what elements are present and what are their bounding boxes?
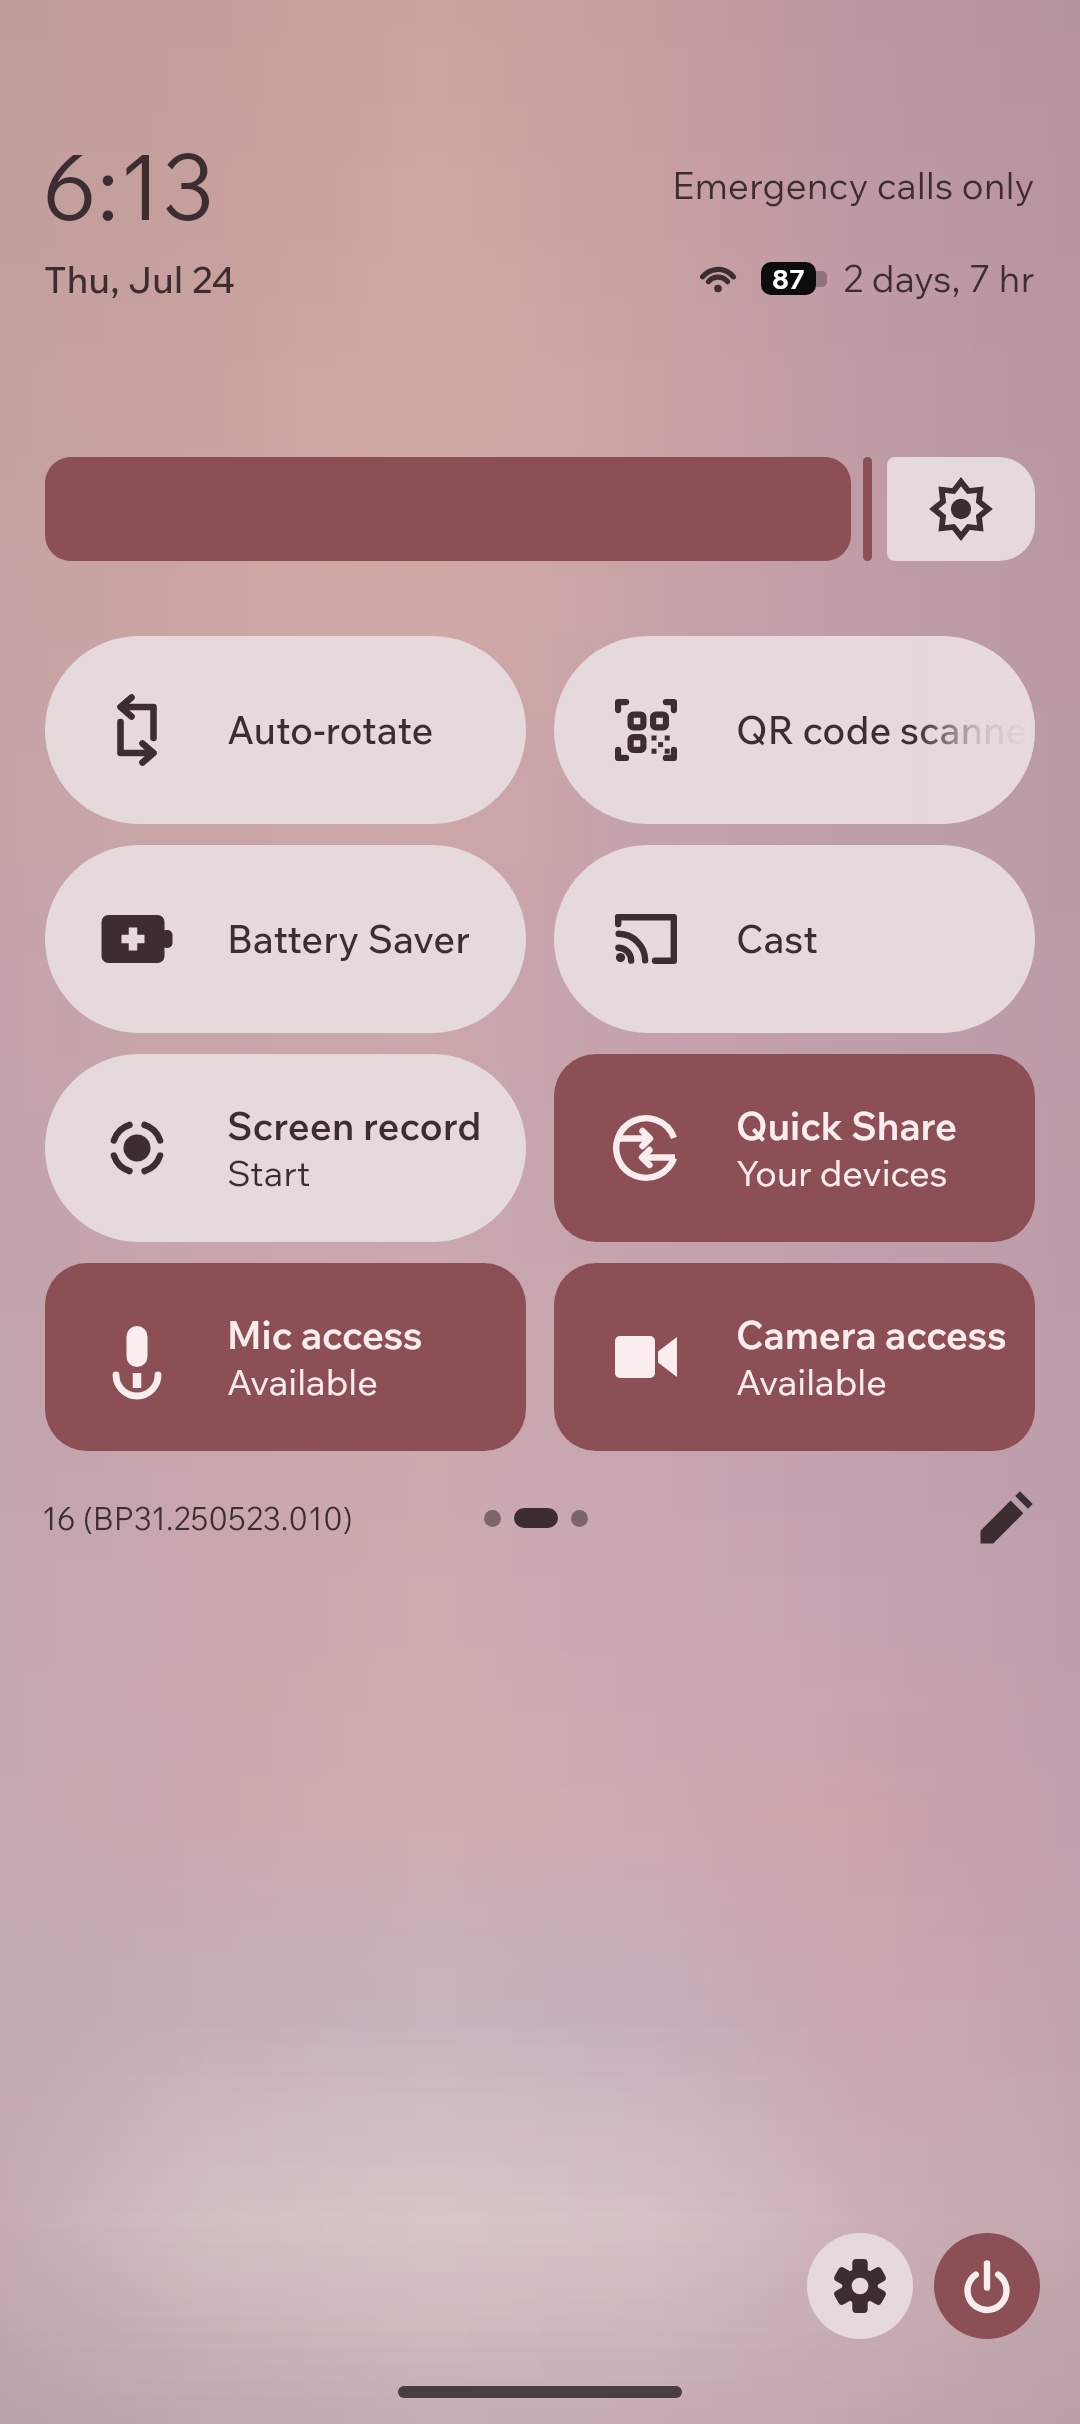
staticText: Quick Share — [736, 1102, 958, 1150]
button[interactable]: Settings — [807, 2233, 913, 2339]
staticText: 6:13 — [42, 129, 215, 242]
staticText: Screen record — [227, 1102, 482, 1150]
button[interactable]: Brightness — [45, 457, 851, 561]
staticText: Camera access — [736, 1311, 1007, 1359]
button[interactable]: QR code scanner — [554, 636, 1035, 824]
button[interactable]: Cast — [554, 845, 1035, 1033]
button[interactable]: Auto-rotate — [45, 636, 526, 824]
staticText: Available — [227, 1359, 378, 1404]
button[interactable]: Screen record — [45, 1054, 526, 1242]
staticText: Battery Saver — [227, 915, 470, 963]
staticText: 2 days, 7 hr — [843, 255, 1035, 302]
button[interactable]: Auto brightness — [887, 457, 1035, 561]
button[interactable]: Power — [934, 2233, 1040, 2339]
staticText: Auto-rotate — [227, 706, 434, 754]
staticText: QR code scanner — [736, 706, 1035, 754]
staticText: 16 (BP31.250523.010) — [42, 1499, 353, 1538]
staticText: Start — [227, 1150, 311, 1195]
staticText: Thu, Jul 24 — [44, 256, 236, 303]
button[interactable]: Camera access — [554, 1263, 1035, 1451]
button[interactable]: Edit tiles — [974, 1486, 1038, 1550]
staticText: Cast — [736, 915, 819, 963]
button[interactable]: Mic access — [45, 1263, 526, 1451]
staticText: Emergency calls only — [672, 162, 1035, 209]
button[interactable]: Battery Saver — [45, 845, 526, 1033]
button[interactable]: Quick Share — [554, 1054, 1035, 1242]
staticText: Mic access — [227, 1311, 423, 1359]
staticText: 87 — [772, 262, 805, 295]
staticText: Your devices — [736, 1150, 948, 1195]
staticText: Available — [736, 1359, 887, 1404]
